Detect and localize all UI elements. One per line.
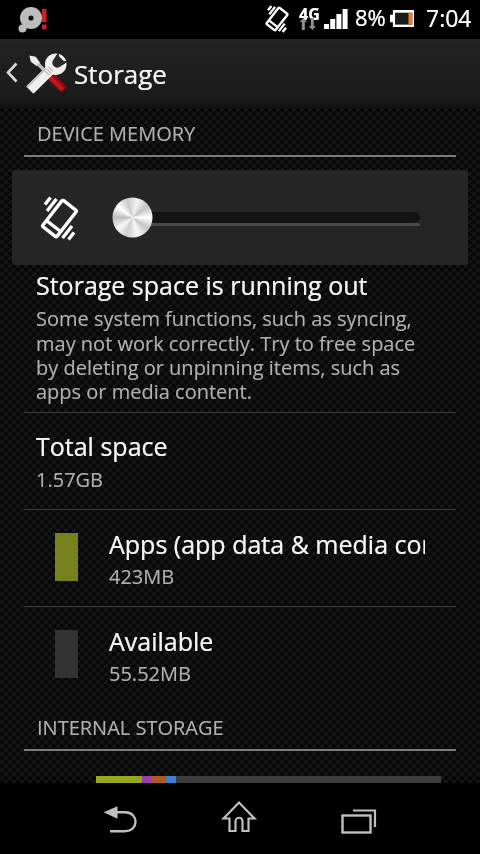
staticText: Storage (74, 56, 167, 91)
staticText: Some system functions, such as syncing, … (36, 305, 416, 405)
button[interactable]: Recent apps (300, 783, 440, 854)
staticText: Available (109, 624, 214, 658)
button[interactable]: Total space (0, 413, 480, 509)
staticText: 423MB (109, 563, 175, 590)
staticText: INTERNAL STORAGE (37, 714, 224, 741)
button[interactable]: Navigate up (0, 39, 480, 109)
button[interactable]: Available (0, 606, 480, 703)
staticText: Storage space is running out (36, 268, 368, 302)
staticText: 8% (355, 2, 386, 32)
button[interactable]: Ringer volume (12, 170, 468, 265)
staticText: 1.57GB (36, 466, 104, 493)
staticText: 7:04 (426, 2, 472, 33)
staticText: 4G (299, 3, 320, 25)
staticText: 55.52MB (109, 660, 191, 687)
staticText: Total space (36, 429, 168, 463)
button[interactable]: Apps (app data & media content) (0, 509, 480, 606)
staticText: Apps (app data & media content) (109, 527, 425, 561)
staticText: DEVICE MEMORY (37, 120, 196, 147)
button[interactable]: Home (180, 783, 300, 854)
button[interactable]: Back (60, 783, 220, 854)
